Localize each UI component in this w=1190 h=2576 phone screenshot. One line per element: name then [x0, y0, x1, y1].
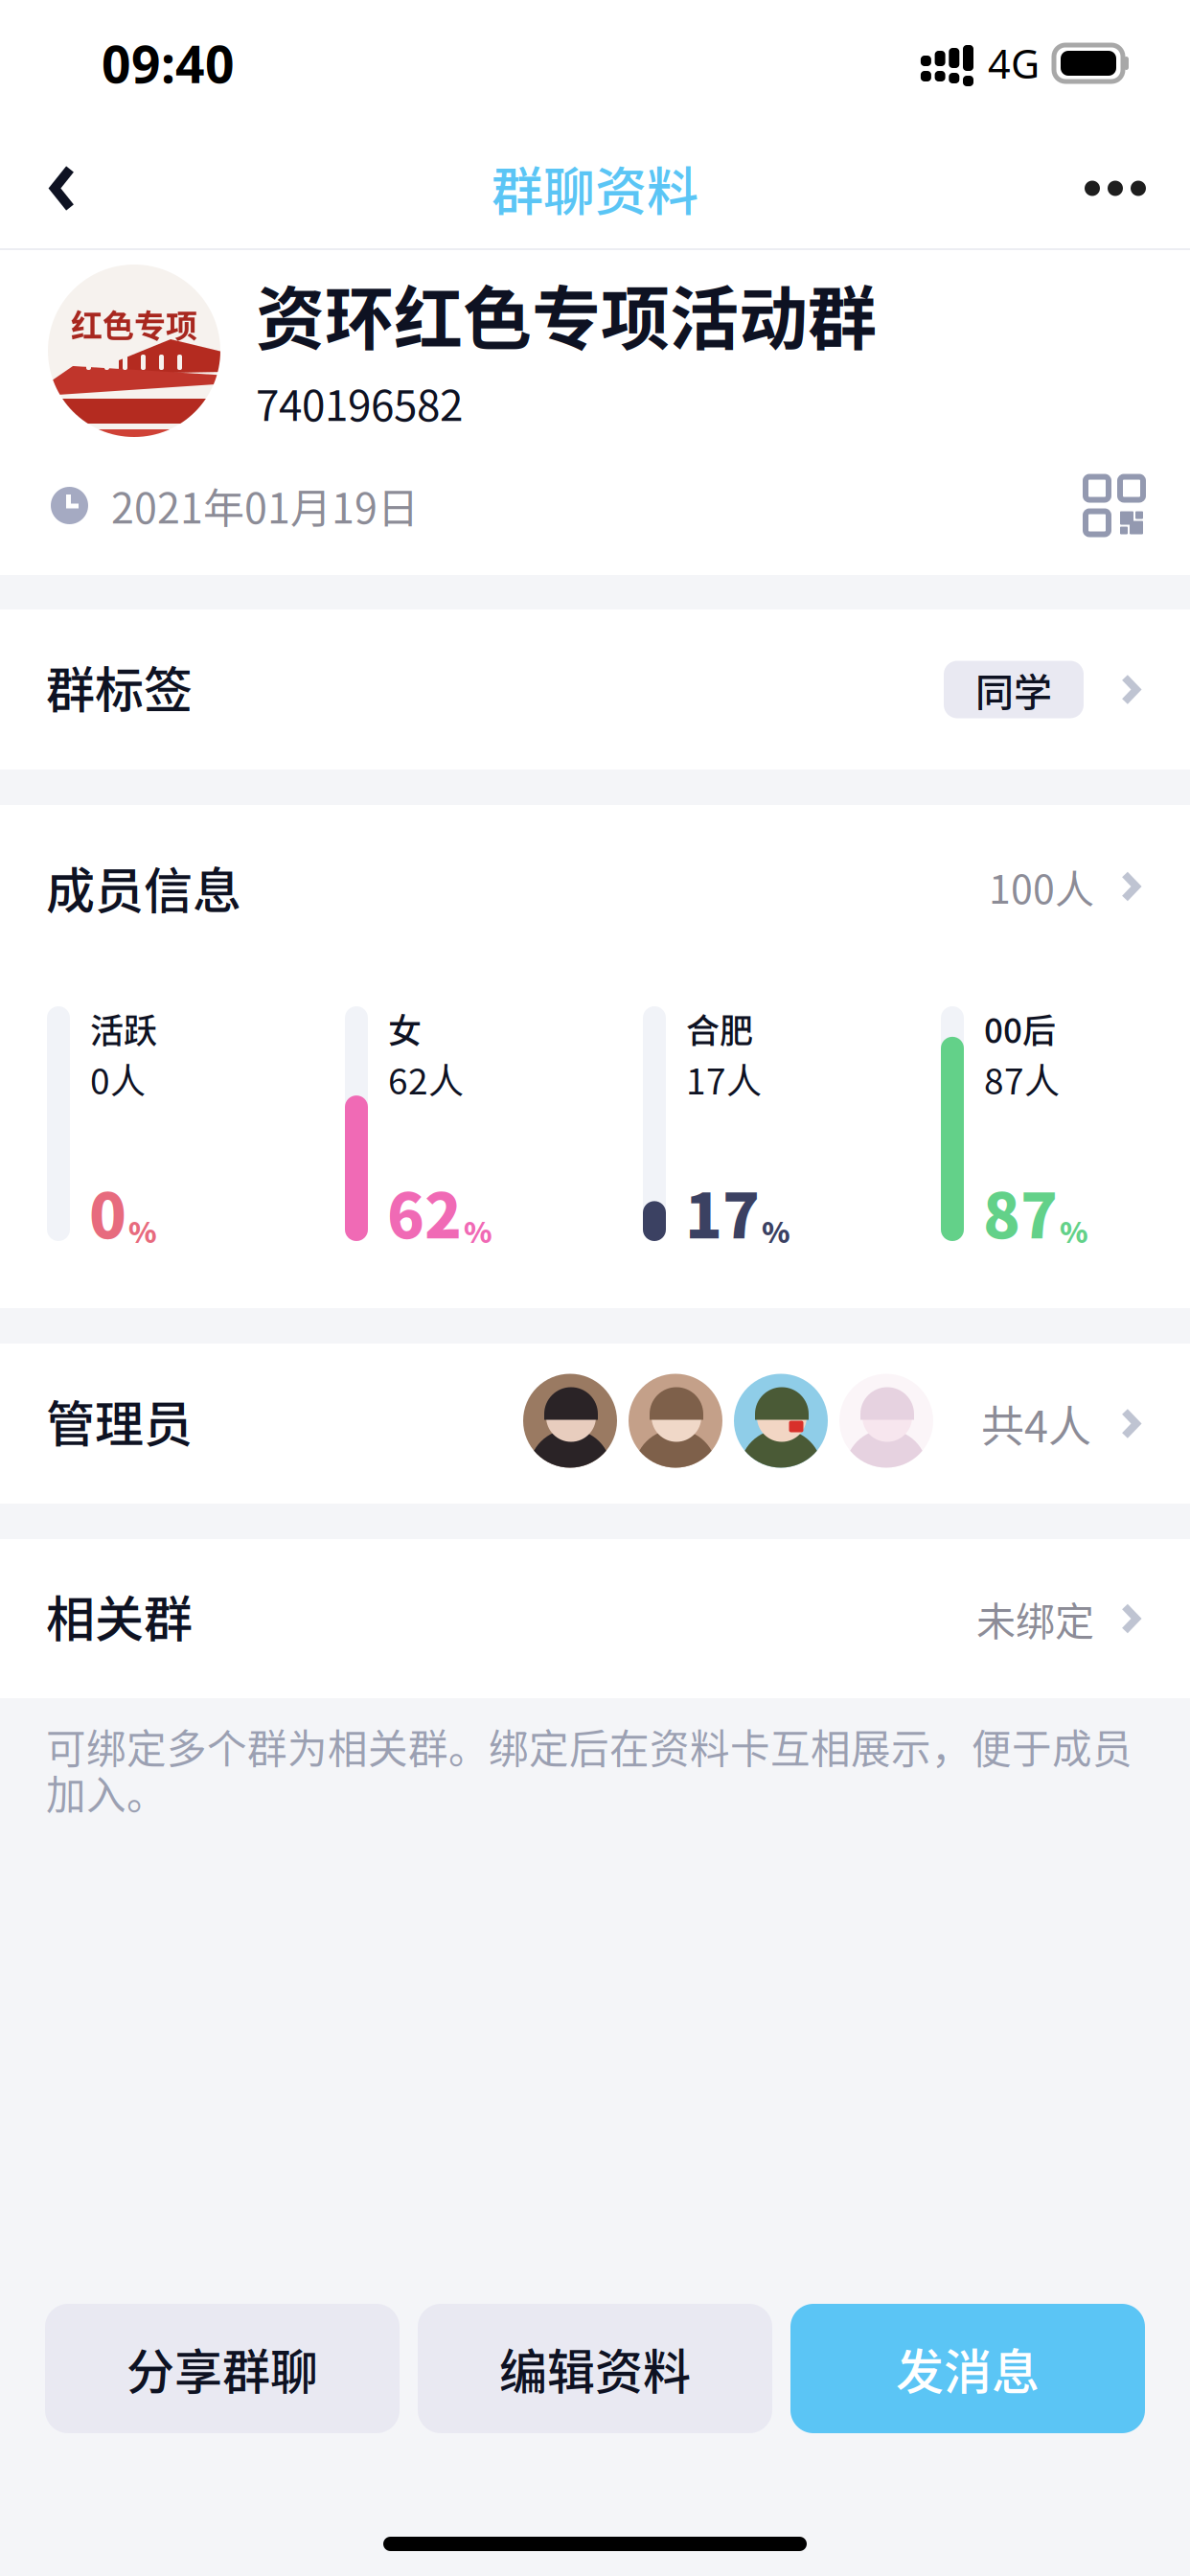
staticText: % [128, 1210, 157, 1251]
staticText: 同学 [975, 662, 1052, 717]
staticText: % [1060, 1210, 1088, 1251]
staticText: % [464, 1210, 492, 1251]
staticText: 女 [388, 1004, 422, 1053]
button[interactable]: Back [0, 126, 123, 250]
staticText: 17 [685, 1167, 760, 1256]
button[interactable]: 相关群 [0, 1539, 1190, 1698]
staticText: % [762, 1210, 790, 1251]
staticText: 分享群聊 [126, 2334, 318, 2403]
staticText: 62人 [388, 1053, 464, 1105]
staticText: 100人 [989, 858, 1094, 915]
staticText: 87人 [984, 1053, 1060, 1105]
staticText: 0人 [90, 1053, 146, 1105]
staticText: 00后 [984, 1004, 1056, 1053]
staticText: 编辑资料 [499, 2334, 691, 2403]
staticText: 0 [89, 1167, 126, 1256]
staticText: 62 [387, 1167, 462, 1256]
staticText: 相关群 [46, 1580, 193, 1651]
staticText: 共4人 [981, 1392, 1091, 1455]
staticText: 可绑定多个群为相关群。绑定后在资料卡互相展示，便于成员加入。 [46, 1717, 1133, 1821]
staticText: 群聊资料 [492, 151, 698, 226]
staticText: 成员信息 [46, 852, 241, 923]
button[interactable]: 管理员 [0, 1344, 1190, 1504]
button[interactable]: 编辑资料 [418, 2304, 772, 2433]
staticText: 管理员 [46, 1385, 193, 1456]
staticText: 合肥 [686, 1004, 753, 1053]
staticText: 资环红色专项活动群 [256, 264, 877, 363]
staticText: 红色专项 [71, 301, 197, 347]
staticText: 87 [983, 1167, 1058, 1256]
staticText: 17人 [686, 1053, 762, 1105]
staticText: 群标签 [46, 651, 193, 722]
button[interactable]: 发消息 [790, 2304, 1145, 2433]
button[interactable]: 分享群聊 [45, 2304, 400, 2433]
button[interactable]: 成员信息 [0, 805, 1190, 968]
button[interactable]: More [1046, 126, 1190, 250]
staticText: 2021年01月19日 [111, 476, 419, 535]
staticText: 4G [988, 37, 1040, 90]
staticText: 09:40 [102, 29, 235, 97]
staticText: 发消息 [896, 2334, 1040, 2403]
staticText: 未绑定 [976, 1590, 1094, 1647]
staticText: 活跃 [90, 1004, 157, 1053]
staticText: 740196582 [256, 372, 463, 433]
button[interactable]: Group QR code [1086, 477, 1143, 534]
button[interactable]: 群标签 [0, 609, 1190, 770]
